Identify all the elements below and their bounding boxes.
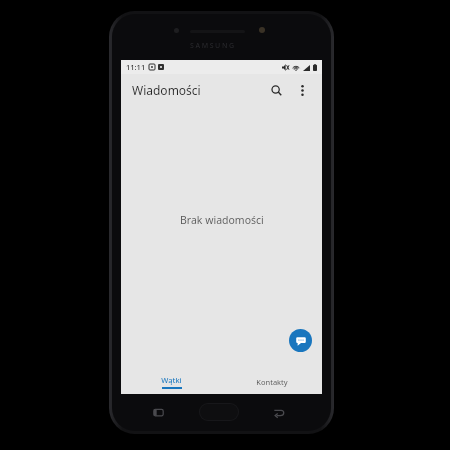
staticText: Kontakty (256, 377, 288, 387)
staticText: Wiadomości (132, 82, 201, 98)
staticText: Wątki (161, 375, 182, 385)
button[interactable]: More options (290, 78, 314, 102)
button[interactable]: Home (199, 403, 239, 421)
button[interactable]: Kontakty (221, 370, 322, 394)
staticText: SAMSUNG (190, 41, 236, 51)
staticText: Brak wiadomości (180, 213, 264, 227)
button[interactable]: Recent apps (152, 407, 165, 418)
staticText: 11:11 (126, 62, 146, 72)
button[interactable]: New message (289, 329, 312, 352)
button[interactable]: Wątki (121, 370, 221, 394)
button[interactable]: Search (264, 78, 288, 102)
button[interactable]: Back (272, 407, 285, 418)
